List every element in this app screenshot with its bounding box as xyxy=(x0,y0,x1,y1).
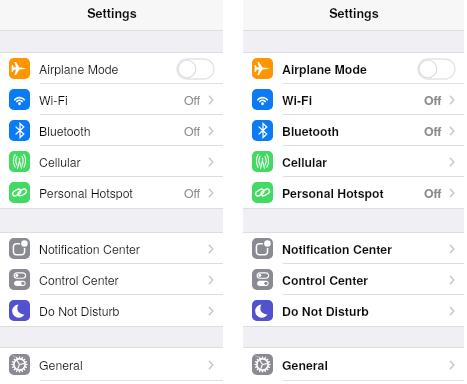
button[interactable]: Notification Center xyxy=(243,233,464,264)
staticText: Airplane Mode xyxy=(39,60,119,78)
button[interactable]: Cellular xyxy=(243,146,464,177)
staticText: General xyxy=(39,356,83,374)
button[interactable]: Airplane Mode toggle, off xyxy=(177,59,214,79)
staticText: Personal Hotspot xyxy=(282,184,384,202)
staticText: Off xyxy=(424,184,442,202)
button[interactable]: Control Center xyxy=(0,264,223,295)
staticText: Control Center xyxy=(282,271,369,289)
staticText: Do Not Disturb xyxy=(39,302,120,320)
staticText: Off xyxy=(424,91,442,109)
button[interactable]: Do Not Disturb xyxy=(0,295,223,326)
button[interactable]: Wi-Fi xyxy=(0,84,223,115)
staticText: Settings xyxy=(87,4,137,22)
button[interactable]: General xyxy=(0,348,223,381)
staticText: Notification Center xyxy=(282,240,392,258)
staticText: Bluetooth xyxy=(39,122,91,140)
staticText: Settings xyxy=(329,4,379,22)
button[interactable]: General xyxy=(243,348,464,381)
button[interactable]: Airplane Mode xyxy=(0,53,223,84)
staticText: Cellular xyxy=(282,153,328,171)
staticText: Do Not Disturb xyxy=(282,302,369,320)
button[interactable]: Personal Hotspot xyxy=(243,177,464,208)
staticText: Bluetooth xyxy=(282,122,340,140)
button[interactable]: Control Center xyxy=(243,264,464,295)
staticText: Personal Hotspot xyxy=(39,184,133,202)
button[interactable]: Settings xyxy=(243,0,464,30)
staticText: Notification Center xyxy=(39,240,140,258)
staticText: General xyxy=(282,356,328,374)
staticText: Off xyxy=(184,91,201,109)
button[interactable]: Do Not Disturb xyxy=(243,295,464,326)
button[interactable]: Airplane Mode xyxy=(243,53,464,84)
button[interactable]: Notification Center xyxy=(0,233,223,264)
staticText: Off xyxy=(424,122,442,140)
staticText: Off xyxy=(184,184,201,202)
button[interactable]: Cellular xyxy=(0,146,223,177)
staticText: Off xyxy=(184,122,201,140)
staticText: Control Center xyxy=(39,271,119,289)
staticText: Airplane Mode xyxy=(282,60,367,78)
staticText: Wi-Fi xyxy=(282,91,313,109)
staticText: Cellular xyxy=(39,153,81,171)
button[interactable]: Personal Hotspot xyxy=(0,177,223,208)
button[interactable]: Airplane Mode toggle, off xyxy=(418,59,455,79)
button[interactable]: Settings xyxy=(0,0,223,30)
button[interactable]: Bluetooth xyxy=(243,115,464,146)
button[interactable]: Wi-Fi xyxy=(243,84,464,115)
staticText: Wi-Fi xyxy=(39,91,68,109)
button[interactable]: Bluetooth xyxy=(0,115,223,146)
